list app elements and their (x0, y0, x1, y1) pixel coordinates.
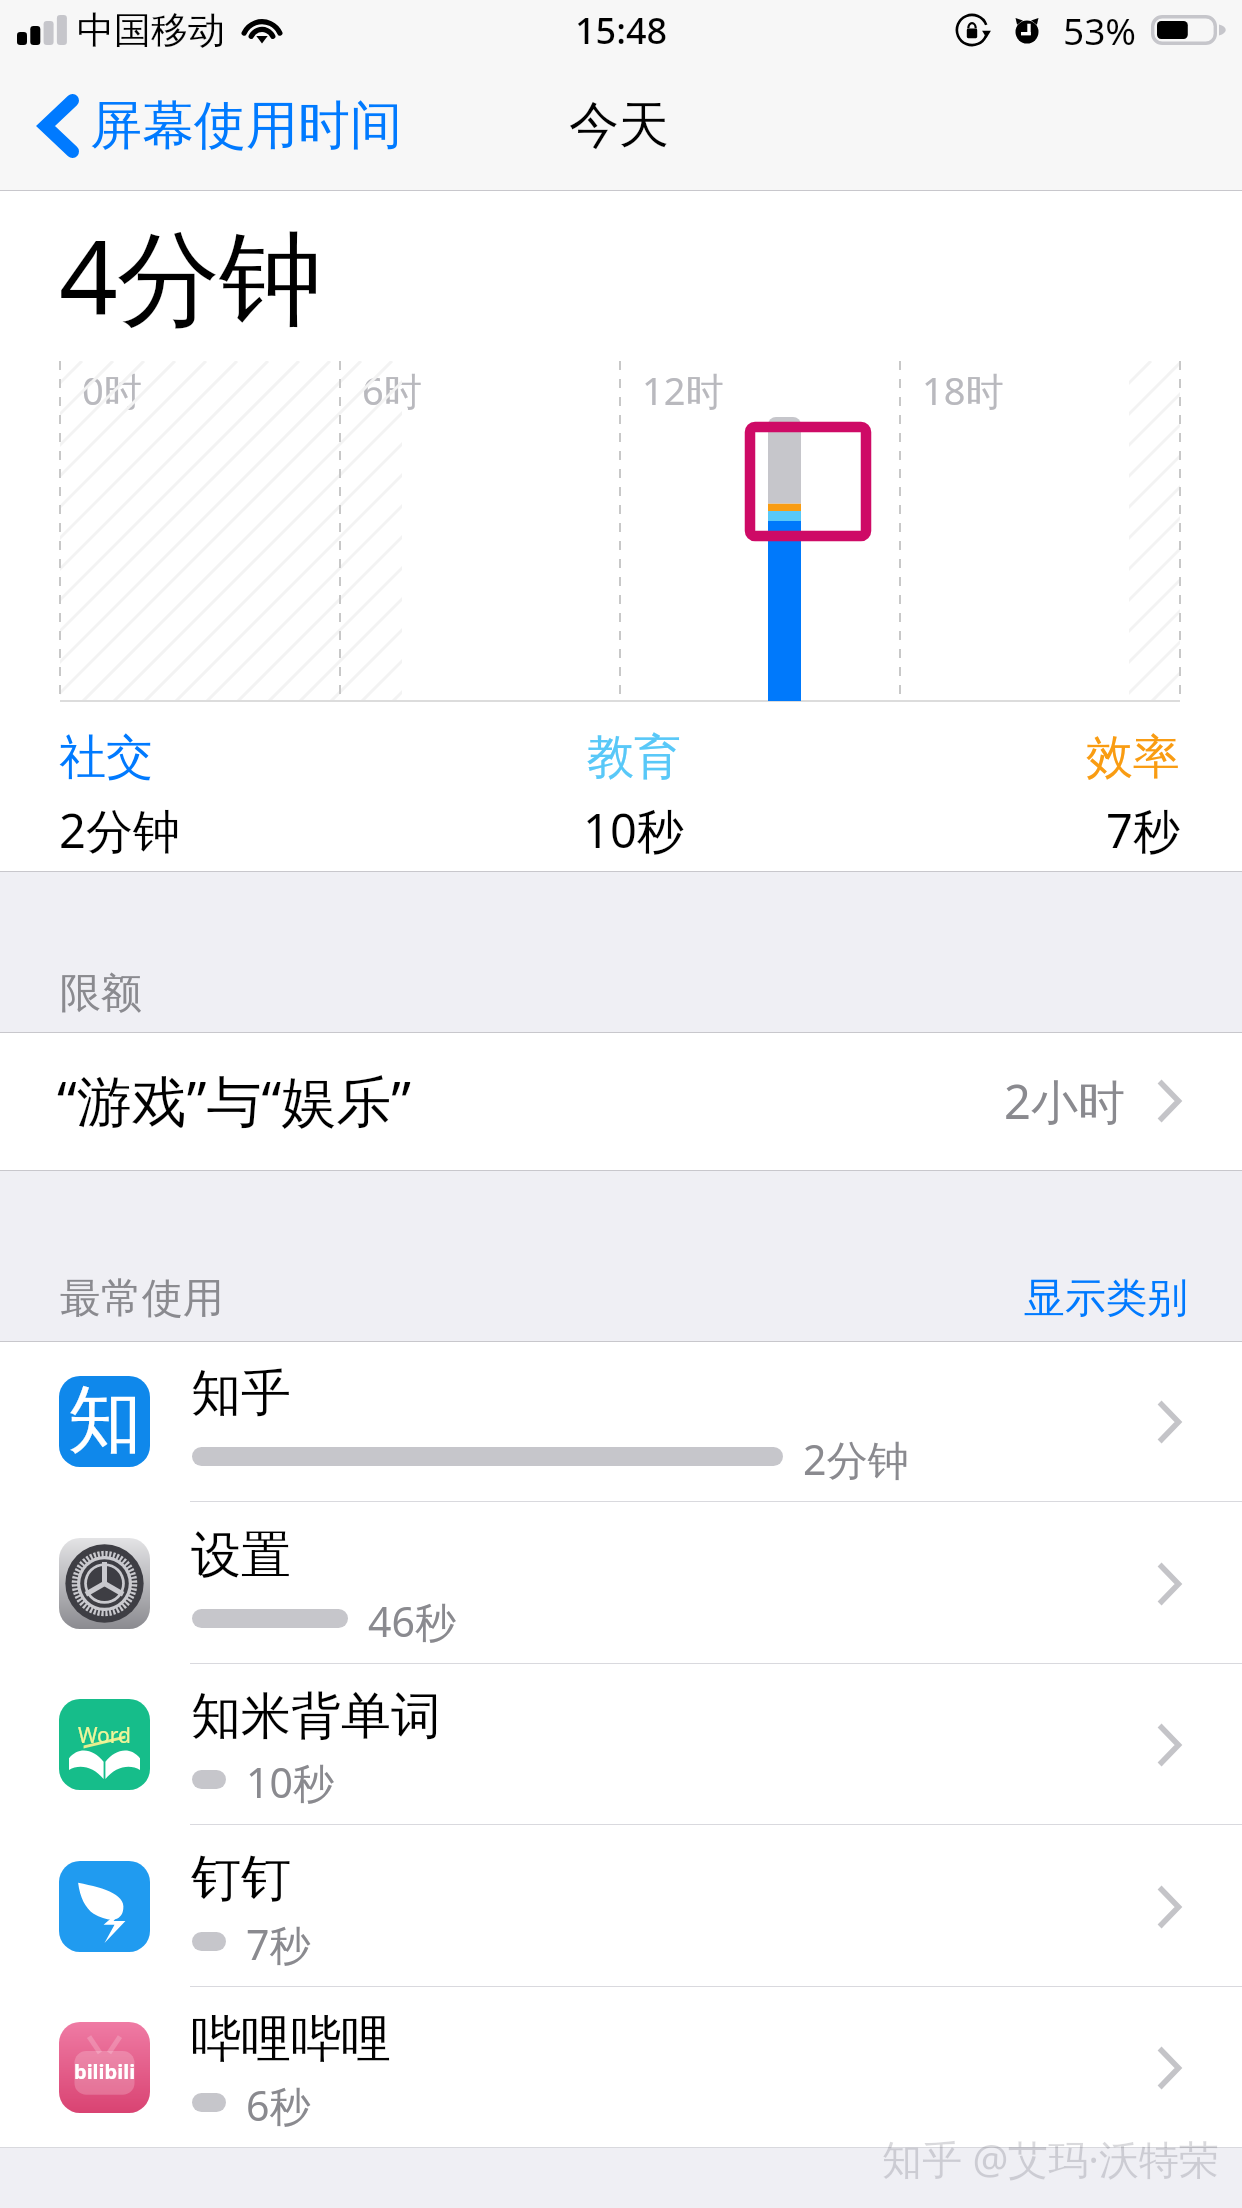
staticText: 2小时 (1004, 1069, 1125, 1133)
staticText: 2分钟 (59, 798, 180, 862)
staticText: 教育 (587, 728, 681, 787)
staticText: 显示类别 (1024, 1273, 1188, 1325)
button[interactable]: bilibili (0, 1988, 1242, 2148)
staticText: 钉钉 (191, 1847, 291, 1910)
staticText: Word (78, 1721, 131, 1750)
staticText: 最常使用 (60, 1273, 224, 1325)
staticText: 53% (1063, 5, 1137, 55)
staticText: 7秒 (246, 1916, 311, 1972)
button[interactable]: “游戏”与“娱乐” (0, 1033, 1242, 1170)
button[interactable]: 钉钉 (0, 1827, 1242, 1987)
staticText: 4分钟 (59, 205, 321, 346)
staticText: 6时 (362, 364, 422, 416)
staticText: 知乎 (191, 1362, 291, 1425)
staticText: 0时 (82, 364, 142, 416)
staticText: 6秒 (246, 2077, 311, 2133)
other: Back (39, 94, 79, 158)
staticText: 屏幕使用时间 (90, 93, 402, 159)
staticText: 设置 (191, 1524, 291, 1587)
staticText: 12时 (642, 364, 724, 416)
staticText: 哔哩哔哩 (191, 2008, 391, 2071)
staticText: 效率 (1086, 728, 1180, 787)
button[interactable]: 设置 (0, 1504, 1242, 1664)
staticText: 知乎 @艾玛·沃特荣 (882, 2131, 1220, 2186)
staticText: 知米背单词 (191, 1685, 441, 1748)
staticText: 15:48 (575, 6, 668, 55)
staticText: 18时 (922, 364, 1004, 416)
staticText: 限额 (60, 968, 142, 1020)
staticText: 2分钟 (803, 1431, 909, 1487)
staticText: 46秒 (368, 1593, 456, 1649)
staticText: 中国移动 (77, 7, 225, 54)
button[interactable]: 知 (0, 1342, 1242, 1502)
staticText: 社交 (59, 728, 153, 787)
staticText: 7秒 (1106, 798, 1180, 862)
button[interactable]: Word (0, 1665, 1242, 1825)
staticText: 10秒 (246, 1754, 334, 1810)
staticText: “游戏”与“娱乐” (57, 1062, 411, 1137)
staticText: bilibili (74, 2058, 136, 2085)
staticText: 10秒 (583, 798, 684, 862)
staticText: 知 (68, 1376, 142, 1465)
staticText: 今天 (569, 94, 669, 157)
button[interactable]: Back (39, 93, 402, 159)
button[interactable]: 显示类别 (1018, 1263, 1193, 1335)
